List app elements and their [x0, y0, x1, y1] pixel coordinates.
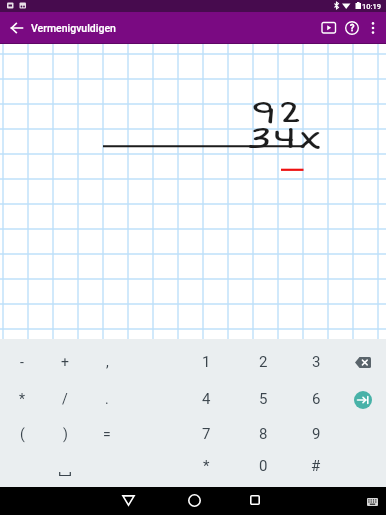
staticText: 4: [202, 390, 211, 408]
staticText: ?: [350, 23, 355, 34]
staticText: 2: [259, 353, 268, 371]
staticText: 7: [202, 425, 211, 443]
button[interactable]: ?: [341, 17, 363, 39]
staticText: =: [103, 426, 111, 442]
staticText: (: [20, 426, 25, 442]
staticText: 9: [312, 425, 321, 443]
staticText: 10:19: [362, 2, 382, 11]
button[interactable]: 7: [185, 416, 227, 452]
button[interactable]: .: [86, 381, 128, 417]
staticText: Vermenigvuldigen: [31, 22, 116, 34]
button[interactable]: ): [44, 416, 86, 452]
button[interactable]: #: [295, 448, 337, 484]
staticText: .: [105, 391, 109, 407]
staticText: 0: [259, 457, 268, 475]
button[interactable]: ,: [86, 344, 128, 380]
staticText: 34x: [246, 120, 322, 157]
staticText: ): [63, 426, 68, 442]
button[interactable]: *: [1, 381, 43, 417]
button[interactable]: [241, 486, 269, 514]
button[interactable]: 1: [185, 344, 227, 380]
button[interactable]: [114, 486, 142, 514]
button[interactable]: [318, 17, 340, 39]
staticText: *: [19, 391, 26, 407]
button[interactable]: 4: [185, 381, 227, 417]
button[interactable]: -: [1, 344, 43, 380]
staticText: /: [62, 391, 68, 407]
staticText: *: [203, 457, 210, 475]
staticText: 8: [259, 425, 268, 443]
button[interactable]: =: [86, 416, 128, 452]
staticText: -: [20, 354, 24, 370]
button[interactable]: [343, 344, 383, 380]
button[interactable]: 9: [295, 416, 337, 452]
button[interactable]: [363, 18, 383, 38]
button[interactable]: 6: [295, 381, 337, 417]
staticText: 92: [251, 94, 303, 131]
button[interactable]: /: [44, 381, 86, 417]
button[interactable]: *: [185, 448, 227, 484]
button[interactable]: 5: [242, 381, 284, 417]
button[interactable]: 2: [242, 344, 284, 380]
button[interactable]: 8: [242, 416, 284, 452]
button[interactable]: 0: [242, 448, 284, 484]
button[interactable]: [5, 448, 125, 484]
staticText: 1: [202, 353, 211, 371]
button[interactable]: [343, 382, 383, 418]
button[interactable]: 3: [295, 344, 337, 380]
button[interactable]: [180, 486, 208, 514]
button[interactable]: [363, 494, 381, 510]
staticText: ,: [106, 354, 109, 370]
staticText: 3: [312, 353, 321, 371]
button[interactable]: +: [44, 344, 86, 380]
staticText: 5: [259, 390, 268, 408]
button[interactable]: (: [1, 416, 43, 452]
staticText: +: [61, 354, 69, 370]
staticText: #: [311, 457, 321, 475]
button[interactable]: [6, 17, 28, 39]
staticText: 6: [312, 390, 321, 408]
